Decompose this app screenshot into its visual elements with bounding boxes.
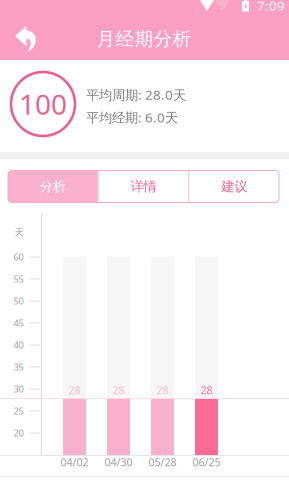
staticText: 28 bbox=[68, 383, 80, 397]
staticText: 100 bbox=[19, 85, 67, 123]
staticText: 06/25 bbox=[192, 455, 220, 469]
staticText: 7:09 bbox=[257, 0, 285, 14]
staticText: 20 bbox=[13, 427, 23, 439]
staticText: 45 bbox=[13, 317, 23, 329]
staticText: 详情 bbox=[130, 178, 156, 195]
staticText: 35 bbox=[13, 361, 23, 373]
button[interactable]: 分析 bbox=[8, 170, 98, 202]
staticText: 分析 bbox=[40, 178, 66, 195]
staticText: 平均周期: 28.0天 bbox=[86, 86, 186, 103]
staticText: 建议 bbox=[221, 178, 247, 195]
button[interactable]: 返回 bbox=[3, 19, 49, 60]
staticText: 55 bbox=[13, 273, 23, 285]
staticText: 28 bbox=[156, 383, 168, 397]
staticText: 50 bbox=[13, 295, 23, 307]
staticText: 30 bbox=[13, 383, 23, 395]
staticText: 05/28 bbox=[148, 455, 176, 469]
staticText: 平均经期: 6.0天 bbox=[86, 108, 178, 126]
staticText: 月经期分析 bbox=[96, 27, 191, 50]
staticText: 25 bbox=[13, 405, 23, 417]
staticText: 28 bbox=[112, 383, 124, 397]
staticText: 28 bbox=[200, 383, 212, 397]
staticText: 04/02 bbox=[60, 455, 88, 469]
staticText: 60 bbox=[13, 251, 23, 263]
button[interactable]: 详情 bbox=[99, 170, 188, 202]
staticText: 40 bbox=[13, 339, 23, 351]
staticText: 天 bbox=[14, 227, 23, 238]
staticText: 04/30 bbox=[104, 455, 132, 469]
button[interactable]: 建议 bbox=[189, 170, 279, 202]
